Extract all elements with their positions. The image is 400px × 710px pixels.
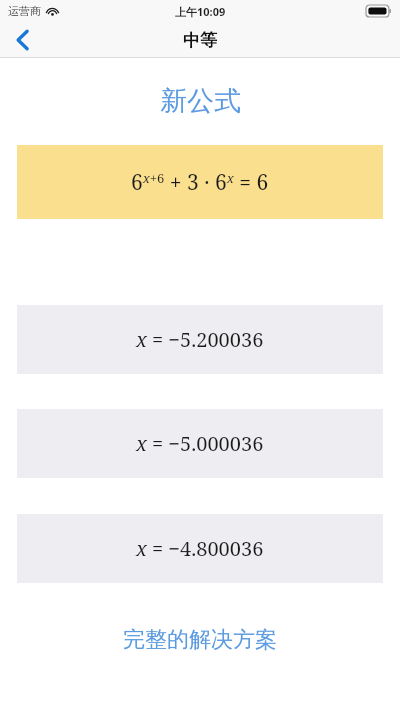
button[interactable]: 6x+6 + 3 · 6x = 6 [17,145,383,219]
staticText: 新公式 [160,84,241,118]
button[interactable]: x = −4.800036 [17,514,383,583]
staticText: 上午10:09 [175,4,226,19]
staticText: 中等 [183,30,217,51]
button[interactable]: x = −5.000036 [17,409,383,478]
button[interactable]: 完整的解决方案 [0,626,400,654]
staticText: 6x+6 + 3 · 6x = 6 [131,168,269,197]
staticText: x = −4.800036 [136,535,264,562]
staticText: x = −5.000036 [136,430,264,457]
staticText: x = −5.200036 [136,326,264,353]
staticText: 完整的解决方案 [123,626,277,654]
button[interactable]: Back [0,22,44,58]
button[interactable]: x = −5.200036 [17,305,383,374]
staticText: 运营商 [8,4,41,18]
